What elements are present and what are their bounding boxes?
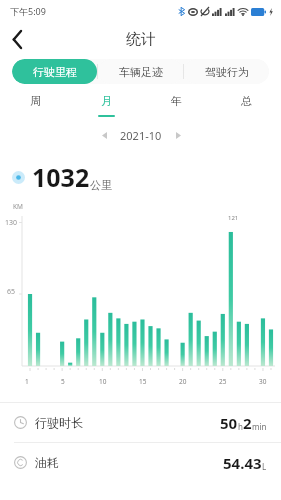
staticText: 54.43 (223, 453, 262, 473)
staticText: 周 (30, 94, 41, 108)
staticText: 驾驶行为 (205, 65, 249, 79)
staticText: h (238, 421, 243, 432)
button[interactable]: Previous month (95, 126, 113, 144)
staticText: 25 (219, 377, 227, 386)
button[interactable]: Next month (169, 126, 187, 144)
staticText: 50 (220, 413, 238, 433)
staticText: 1 (25, 377, 29, 386)
staticText: 年 (171, 94, 182, 108)
button[interactable]: 月 (71, 94, 141, 124)
staticText: 20 (179, 377, 187, 386)
staticText: 130 (5, 218, 18, 228)
staticText: 30 (259, 377, 267, 386)
staticText: 下午5:09 (10, 5, 46, 17)
staticText: 15 (139, 377, 147, 386)
staticText: 121 (228, 214, 239, 222)
button[interactable]: 行驶时长 (0, 403, 281, 442)
staticText: 1032 (32, 160, 90, 194)
button[interactable]: 车辆足迹 (98, 59, 183, 84)
staticText: L (262, 461, 267, 472)
staticText: min (252, 421, 267, 432)
staticText: 公里 (90, 178, 112, 192)
staticText: 65 (7, 287, 16, 297)
staticText: 行驶里程 (33, 65, 77, 79)
staticText: 行驶时长 (35, 415, 83, 430)
staticText: 月 (101, 94, 112, 108)
staticText: 10 (99, 377, 107, 386)
staticText: 5 (61, 377, 65, 386)
staticText: 统计 (126, 30, 156, 49)
button[interactable]: 行驶里程 (12, 59, 97, 84)
button[interactable]: 总 (211, 94, 281, 124)
staticText: KM (13, 202, 23, 211)
button[interactable]: Back (0, 22, 34, 56)
staticText: 2021-10 (120, 128, 162, 143)
button[interactable]: 周 (0, 94, 71, 124)
button[interactable]: 驾驶行为 (184, 59, 269, 84)
button[interactable]: 年 (141, 94, 211, 124)
staticText: 2 (243, 413, 252, 433)
staticText: 油耗 (35, 455, 59, 470)
staticText: 车辆足迹 (119, 65, 163, 79)
button[interactable]: 油耗 (0, 443, 281, 482)
staticText: 总 (241, 94, 252, 108)
